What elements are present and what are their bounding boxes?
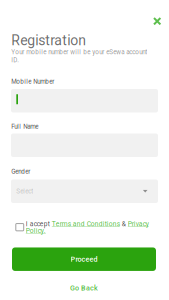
button[interactable]: Proceed — [12, 247, 156, 271]
staticText: Mobile Number — [11, 78, 54, 85]
button[interactable]: I accept Terms and Conditions & Privacy … — [26, 220, 150, 236]
staticText: Go Back — [70, 284, 98, 292]
staticText: I accept Terms and Conditions & Privacy … — [26, 220, 149, 235]
button[interactable]: I accept Terms and Conditions and Privac… — [13, 220, 27, 234]
button[interactable]: Close — [145, 9, 169, 33]
staticText: Your mobile number will be your eSewa ac… — [11, 48, 147, 64]
staticText: Proceed — [70, 255, 97, 263]
staticText: Full Name — [11, 123, 38, 130]
button[interactable]: Go Back — [12, 281, 156, 295]
staticText: Registration — [11, 32, 86, 49]
staticText: Select — [16, 188, 33, 195]
staticText: Gender — [11, 168, 30, 175]
